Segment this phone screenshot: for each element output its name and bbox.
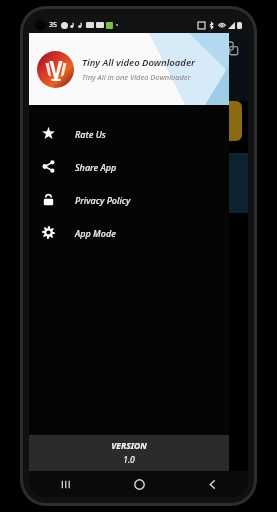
button[interactable]: Back xyxy=(199,471,225,497)
button[interactable]: Multi window xyxy=(222,39,240,57)
button[interactable]: Home xyxy=(126,471,152,497)
staticText: App Mode xyxy=(75,227,116,239)
staticText: 1.0 xyxy=(123,454,135,466)
button[interactable]: Rate Us xyxy=(29,117,229,150)
button[interactable]: Tiny All video Downloader xyxy=(29,33,229,105)
staticText: Tiny All video Downloader xyxy=(82,56,195,69)
button[interactable]: App Mode xyxy=(29,216,229,249)
staticText: VERSION xyxy=(111,440,147,452)
button[interactable]: VERSION xyxy=(29,435,229,471)
button[interactable]: Share App xyxy=(29,150,229,183)
staticText: Tiny All in one Video Downloader xyxy=(82,72,191,82)
staticText: m videos xyxy=(33,233,55,253)
button[interactable]: Recents xyxy=(53,471,79,497)
staticText: Rate Us xyxy=(75,128,106,140)
staticText: 35 xyxy=(49,20,58,30)
button[interactable]: Privacy Policy xyxy=(29,183,229,216)
staticText: Privacy Policy xyxy=(75,194,131,206)
staticText: Share App xyxy=(75,161,117,173)
